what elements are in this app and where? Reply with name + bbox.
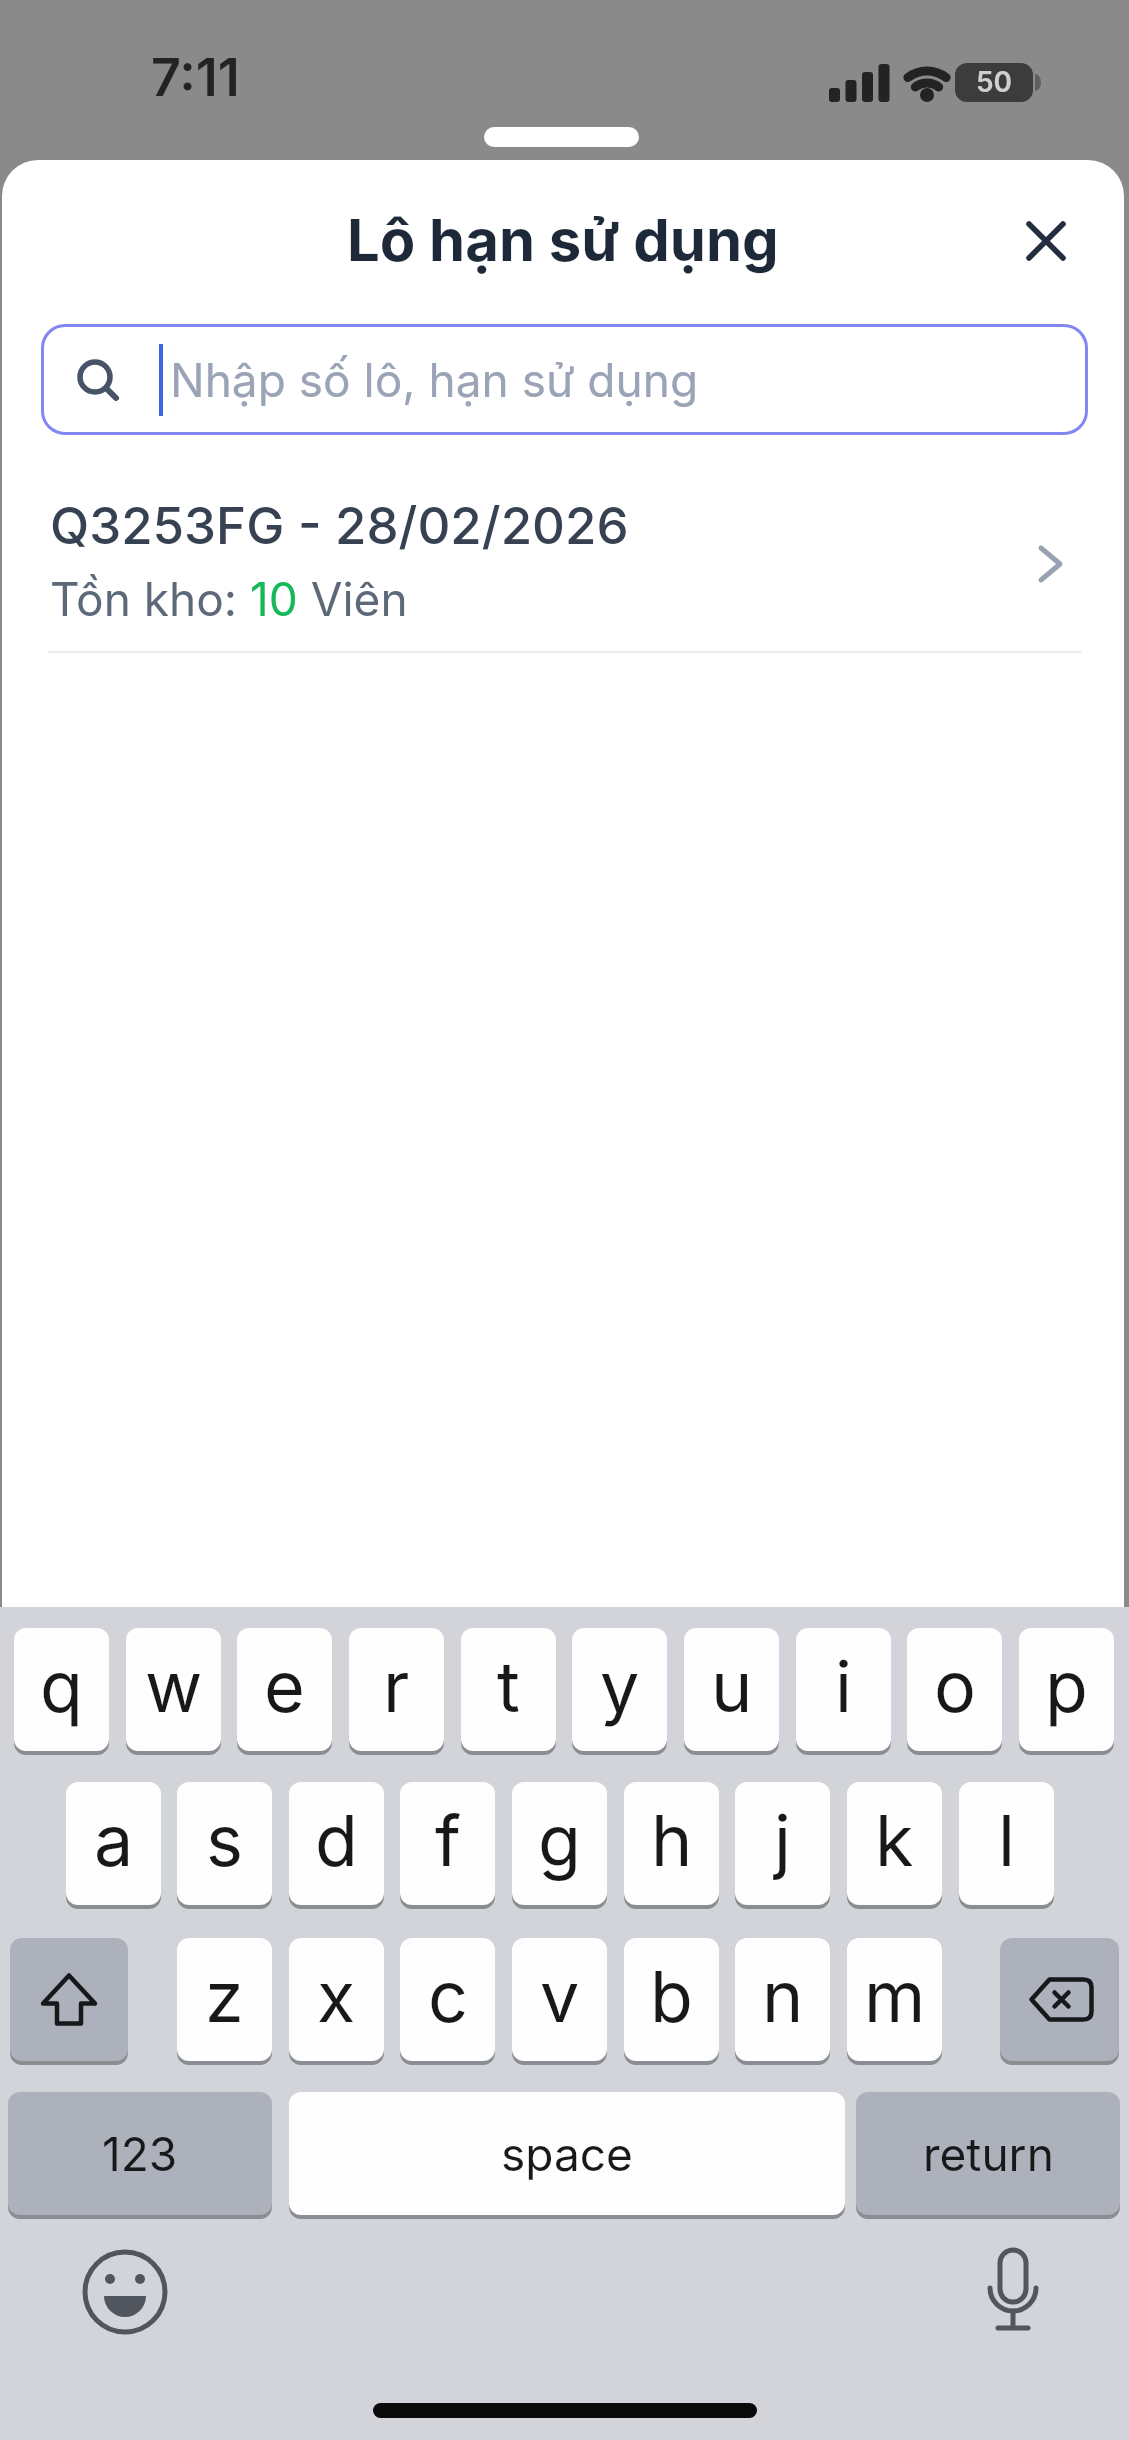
staticText: d — [315, 1798, 358, 1883]
button[interactable] — [81, 2248, 169, 2336]
button[interactable]: k — [847, 1782, 942, 1905]
button[interactable]: i — [796, 1628, 891, 1751]
button[interactable]: e — [237, 1628, 332, 1751]
button[interactable]: c — [400, 1938, 495, 2061]
staticText: v — [540, 1954, 580, 2039]
staticText: 7:11 — [151, 46, 240, 109]
staticText: w — [145, 1644, 203, 1729]
staticText: q — [40, 1644, 83, 1729]
staticText: l — [998, 1798, 1015, 1883]
staticText: p — [1045, 1644, 1088, 1729]
button[interactable]: f — [400, 1782, 495, 1905]
button[interactable]: 123 — [8, 2092, 272, 2215]
staticText: Lô hạn sử dụng — [347, 205, 779, 275]
staticText: i — [835, 1644, 852, 1729]
staticText: h — [651, 1798, 693, 1883]
button[interactable]: o — [907, 1628, 1002, 1751]
button[interactable]: b — [624, 1938, 719, 2061]
staticText: n — [762, 1954, 804, 2039]
button[interactable]: m — [847, 1938, 942, 2061]
staticText: a — [94, 1798, 134, 1883]
button[interactable]: d — [289, 1782, 384, 1905]
staticText: y — [600, 1644, 640, 1729]
staticText: z — [205, 1954, 244, 2039]
button[interactable]: w — [126, 1628, 221, 1751]
staticText: s — [206, 1798, 243, 1883]
button[interactable]: j — [735, 1782, 830, 1905]
button[interactable]: n — [735, 1938, 830, 2061]
staticText: k — [875, 1798, 914, 1883]
staticText: Tồn kho: 10 Viên — [50, 571, 408, 627]
staticText: j — [774, 1798, 791, 1883]
button[interactable]: Q3253FG - 28/02/2026 — [2, 435, 1124, 653]
staticText: Q3253FG - 28/02/2026 — [50, 495, 629, 557]
button[interactable] — [1000, 1938, 1119, 2061]
staticText: m — [864, 1954, 926, 2039]
staticText: e — [264, 1644, 305, 1729]
button[interactable]: a — [66, 1782, 161, 1905]
button[interactable]: space — [289, 2092, 845, 2215]
staticText: return — [923, 2126, 1054, 2182]
button[interactable] — [10, 1938, 128, 2061]
staticText: r — [383, 1644, 410, 1729]
button[interactable]: q — [14, 1628, 109, 1751]
button[interactable]: y — [572, 1628, 667, 1751]
button[interactable]: z — [177, 1938, 272, 2061]
button[interactable] — [969, 2248, 1057, 2336]
button[interactable] — [1018, 213, 1074, 269]
staticText: x — [317, 1954, 356, 2039]
button[interactable]: t — [461, 1628, 556, 1751]
button[interactable]: v — [512, 1938, 607, 2061]
staticText: b — [650, 1954, 693, 2039]
button[interactable]: s — [177, 1782, 272, 1905]
staticText: o — [934, 1644, 976, 1729]
button[interactable]: r — [349, 1628, 444, 1751]
button[interactable]: p — [1019, 1628, 1114, 1751]
button[interactable]: g — [512, 1782, 607, 1905]
staticText: c — [428, 1954, 468, 2039]
staticText: space — [501, 2126, 633, 2182]
staticText: g — [538, 1798, 581, 1883]
staticText: u — [711, 1644, 753, 1729]
staticText: f — [435, 1798, 461, 1883]
button[interactable]: x — [289, 1938, 384, 2061]
button[interactable]: u — [684, 1628, 779, 1751]
staticText: 123 — [102, 2126, 178, 2182]
staticText: 50 — [955, 65, 1033, 104]
button[interactable]: h — [624, 1782, 719, 1905]
button[interactable]: Nhập số lô, hạn sử dụng — [41, 324, 1088, 435]
button[interactable]: return — [856, 2092, 1120, 2215]
staticText: t — [497, 1644, 520, 1729]
button[interactable]: l — [959, 1782, 1054, 1905]
staticText: Nhập số lô, hạn sử dụng — [170, 352, 699, 408]
